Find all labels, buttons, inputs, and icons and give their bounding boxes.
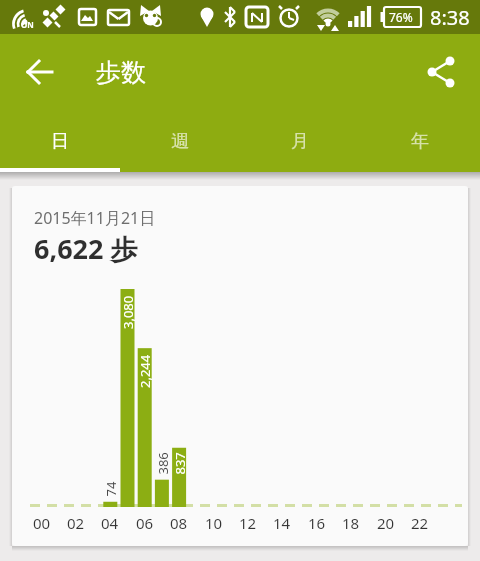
staticText: 18 bbox=[342, 513, 360, 533]
staticText: 04 bbox=[101, 513, 119, 533]
staticText: 6,622 歩 bbox=[34, 230, 138, 267]
button[interactable] bbox=[426, 56, 458, 88]
staticText: 年 bbox=[411, 130, 429, 153]
button[interactable]: 月 bbox=[240, 110, 360, 172]
staticText: 06 bbox=[136, 513, 154, 533]
staticText: 日 bbox=[51, 130, 69, 153]
button[interactable]: 週 bbox=[120, 110, 240, 172]
staticText: 20 bbox=[377, 513, 395, 533]
button[interactable]: 年 bbox=[360, 110, 480, 172]
staticText: 14 bbox=[273, 513, 291, 533]
button[interactable] bbox=[18, 50, 62, 94]
staticText: ON bbox=[21, 19, 34, 30]
staticText: 12 bbox=[239, 513, 257, 533]
staticText: 74 bbox=[101, 481, 119, 496]
staticText: 02 bbox=[67, 513, 85, 533]
staticText: 3,080 bbox=[119, 295, 137, 329]
staticText: 2,244 bbox=[136, 354, 154, 388]
staticText: 歩数 bbox=[96, 57, 146, 88]
staticText: 00 bbox=[33, 513, 51, 533]
staticText: 週 bbox=[171, 130, 189, 153]
staticText: 386 bbox=[153, 451, 171, 474]
staticText: 22 bbox=[411, 513, 429, 533]
staticText: 837 bbox=[170, 451, 188, 474]
staticText: 76% bbox=[389, 9, 413, 25]
staticText: 月 bbox=[291, 130, 309, 153]
staticText: 8:38 bbox=[430, 4, 470, 31]
staticText: 10 bbox=[205, 513, 223, 533]
button[interactable]: 日 bbox=[0, 110, 120, 172]
staticText: 16 bbox=[308, 513, 326, 533]
staticText: 2015年11月21日 bbox=[34, 207, 156, 229]
staticText: 08 bbox=[170, 513, 188, 533]
